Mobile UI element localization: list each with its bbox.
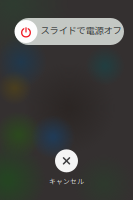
staticText: スライドで電源オフ xyxy=(40,23,121,37)
button[interactable]: スライドで電源オフ xyxy=(15,18,124,45)
staticText: キャンセル xyxy=(49,176,84,186)
button[interactable]: キャンセル xyxy=(49,149,84,186)
